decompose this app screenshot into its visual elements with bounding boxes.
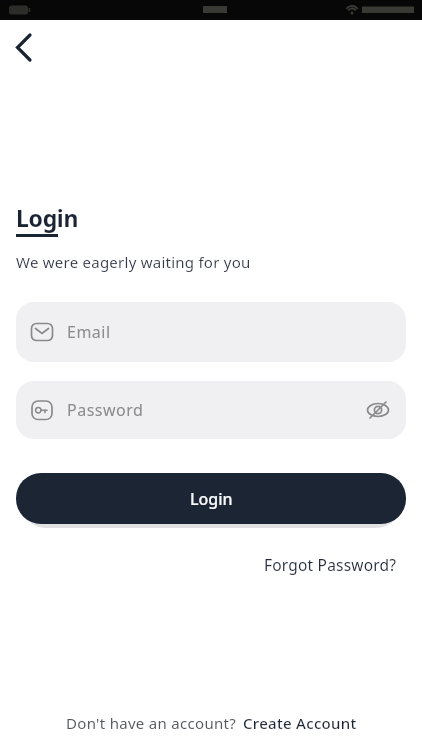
button[interactable] [356,388,400,432]
staticText: Login [16,202,79,233]
button[interactable]: Password [16,381,406,439]
staticText: Password [67,399,144,421]
button[interactable]: Create Account [243,713,357,733]
staticText: Forgot Password? [264,554,397,575]
staticText: Email [67,321,111,343]
staticText: Login [190,488,233,510]
button[interactable] [6,31,46,71]
staticText: We were eagerly waiting for you [16,252,251,272]
button[interactable]: Forgot Password? [264,554,422,575]
staticText: Don't have an account? [66,713,237,733]
staticText: Create Account [243,713,357,733]
button[interactable]: Login [16,473,406,524]
button[interactable]: Email [16,302,406,362]
